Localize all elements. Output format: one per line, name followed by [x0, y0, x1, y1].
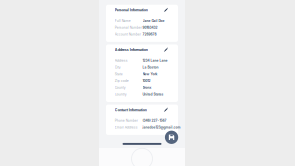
staticText: 90163432 [142, 25, 157, 29]
staticText: 10012 [142, 79, 150, 83]
button[interactable]: Save [165, 131, 178, 144]
staticText: (346) 227-1567 [142, 119, 166, 123]
staticText: New York [142, 72, 157, 76]
button[interactable]: Edit Contact Information [162, 106, 169, 113]
staticText: La Boston [142, 65, 158, 69]
staticText: Personal Information [115, 8, 148, 12]
staticText: Address Information [115, 48, 148, 52]
button[interactable]: Edit Personal Information [162, 6, 169, 13]
staticText: Bronx [142, 86, 151, 90]
staticText: County [115, 86, 126, 90]
staticText: Account Number [115, 32, 141, 36]
staticText: Contact Information [115, 108, 147, 112]
staticText: City [115, 65, 121, 69]
staticText: Address [115, 58, 128, 62]
staticText: Full Name [115, 19, 131, 23]
staticText: Jane Gail Doe [142, 19, 164, 23]
staticText: janedoe123@gmail.com [142, 125, 180, 129]
staticText: Phone Number [115, 119, 138, 123]
staticText: Personal Number [115, 25, 142, 29]
staticText: 7269678 [142, 32, 156, 36]
staticText: Email Address [115, 125, 138, 129]
staticText: United States [142, 92, 163, 96]
staticText: 1234 Lane Lane [142, 58, 167, 62]
staticText: Zip code [115, 79, 129, 83]
staticText: State [115, 72, 123, 76]
button[interactable]: Edit Address Information [162, 46, 169, 53]
staticText: Country [115, 92, 127, 96]
